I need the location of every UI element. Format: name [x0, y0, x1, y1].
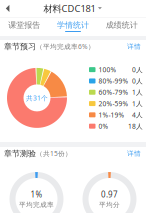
staticText: 平均分: [99, 201, 120, 209]
staticText: 课堂报告: [8, 20, 40, 30]
staticText: 章节预习: [4, 42, 36, 51]
staticText: （平均完成率6%）: [36, 42, 95, 51]
staticText: 成绩统计: [106, 20, 138, 30]
staticText: 1人: [132, 88, 143, 97]
staticText: 详情: [127, 149, 141, 158]
staticText: 18人: [128, 122, 143, 131]
staticText: 1人: [132, 99, 143, 108]
staticText: 0人: [132, 76, 143, 85]
button[interactable]: Back: [0, 0, 16, 17]
staticText: 0%: [98, 122, 108, 131]
staticText: 60%-79%: [98, 88, 128, 97]
staticText: （共15份）: [36, 149, 72, 158]
button[interactable]: 详情: [125, 39, 143, 54]
staticText: 详情: [127, 42, 141, 51]
staticText: 1%-19%: [98, 110, 124, 119]
staticText: 100%: [98, 65, 116, 74]
button[interactable]: 成绩统计: [97, 17, 146, 36]
staticText: 4人: [132, 110, 143, 119]
staticText: 1%: [30, 189, 42, 200]
button[interactable]: 材料CDC181: [39, 0, 106, 18]
staticText: 0.97: [101, 189, 118, 200]
button[interactable]: 课堂报告: [0, 17, 49, 36]
staticText: 共31个: [26, 93, 48, 102]
button[interactable]: 学情统计: [49, 17, 97, 36]
staticText: 平均完成率: [19, 201, 54, 209]
button[interactable]: 详情: [125, 146, 143, 161]
staticText: 学情统计: [57, 20, 89, 30]
staticText: 80%-99%: [98, 76, 128, 85]
staticText: 材料CDC181: [43, 2, 95, 15]
staticText: 0人: [132, 65, 143, 74]
staticText: 章节测验: [4, 149, 36, 158]
staticText: 20%-59%: [98, 99, 128, 108]
